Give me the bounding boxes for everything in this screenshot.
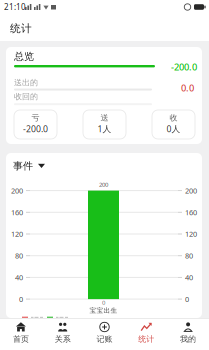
staticText: 80 xyxy=(15,251,23,261)
staticText: 1人 xyxy=(97,123,111,135)
staticText: 0 xyxy=(19,294,23,304)
staticText: 送 xyxy=(100,113,108,123)
staticText: 亏 xyxy=(31,113,39,123)
staticText: 关系 xyxy=(55,334,71,344)
staticText: 收 xyxy=(169,113,177,123)
staticText: 记账 xyxy=(96,334,112,344)
staticText: 统计 xyxy=(10,22,32,35)
staticText: -200.0 xyxy=(171,61,197,73)
staticText: 200 xyxy=(99,180,108,189)
staticText: 0 xyxy=(102,298,105,307)
staticText: 首页 xyxy=(13,334,29,344)
staticText: 120 xyxy=(185,229,197,239)
staticText: 200 xyxy=(11,186,23,196)
staticText: 21:10 xyxy=(4,2,26,12)
staticText: 40 xyxy=(15,272,23,282)
staticText: 统计 xyxy=(138,334,154,344)
staticText: 收回的 xyxy=(14,91,38,102)
staticText: 我的 xyxy=(180,334,196,344)
staticText: 事件 xyxy=(13,160,33,172)
staticText: 0人 xyxy=(166,123,180,135)
staticText: -200.0 xyxy=(23,123,48,135)
staticText: 总览 xyxy=(14,50,34,63)
staticText: 160 xyxy=(11,207,23,217)
staticText: 200 xyxy=(185,186,197,196)
staticText: 80 xyxy=(185,251,193,261)
staticText: 0 xyxy=(185,294,189,304)
staticText: 40 xyxy=(185,272,193,282)
staticText: 120 xyxy=(11,229,23,239)
staticText: 160 xyxy=(185,207,197,217)
staticText: 0.0 xyxy=(181,82,194,94)
staticText: 送出的 xyxy=(14,77,38,88)
staticText: 宝宝出生 xyxy=(89,306,117,315)
